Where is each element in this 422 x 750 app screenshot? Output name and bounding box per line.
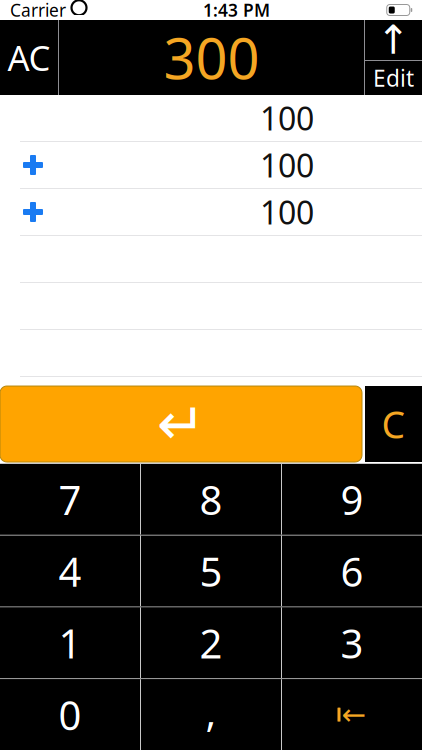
staticText: 6 — [340, 545, 363, 598]
staticText: 8 — [199, 473, 222, 526]
button[interactable]: 7 — [0, 464, 140, 535]
staticText: 100 — [260, 144, 314, 186]
button[interactable]: 0 — [0, 679, 140, 750]
button[interactable]: 100 — [0, 189, 422, 236]
button[interactable]: C — [365, 386, 422, 462]
staticText: 7 — [58, 473, 81, 526]
button[interactable]: Edit — [365, 61, 422, 95]
staticText: ← — [341, 698, 366, 731]
button[interactable]: 4 — [0, 536, 140, 607]
button[interactable]: 8 — [141, 464, 281, 535]
button[interactable]: 100 — [0, 142, 422, 189]
button[interactable]: 3 — [282, 607, 422, 678]
button[interactable]: Enter — [0, 386, 362, 462]
staticText: 5 — [199, 545, 222, 598]
staticText: ↑ — [376, 17, 410, 63]
staticText: 2 — [199, 616, 222, 669]
button[interactable]: 5 — [141, 536, 281, 607]
button[interactable]: AC — [0, 20, 58, 95]
staticText: 1 — [58, 616, 81, 669]
staticText: Carrier — [10, 0, 66, 21]
staticText: C — [381, 399, 405, 449]
staticText: 9 — [340, 473, 363, 526]
button[interactable]: 100 — [0, 95, 422, 142]
button[interactable]: 2 — [141, 607, 281, 678]
button[interactable]: Collapse keypad — [365, 20, 422, 60]
button[interactable] — [0, 330, 422, 377]
staticText: 100 — [260, 97, 314, 139]
staticText: , — [205, 685, 216, 738]
staticText: 4 — [58, 545, 81, 598]
button[interactable]: Backspace — [282, 679, 422, 750]
staticText: 1:43 PM — [203, 0, 270, 21]
button[interactable]: 6 — [282, 536, 422, 607]
button[interactable]: , — [141, 679, 281, 750]
staticText: 300 — [163, 20, 259, 95]
button[interactable] — [0, 283, 422, 330]
button[interactable]: 1 — [0, 607, 140, 678]
button[interactable] — [0, 236, 422, 283]
button[interactable]: 9 — [282, 464, 422, 535]
staticText: ↵ — [156, 391, 205, 457]
staticText: Edit — [373, 63, 414, 93]
staticText: 3 — [340, 616, 363, 669]
staticText: AC — [7, 34, 50, 80]
staticText: 100 — [260, 191, 314, 233]
staticText: 0 — [58, 688, 81, 741]
